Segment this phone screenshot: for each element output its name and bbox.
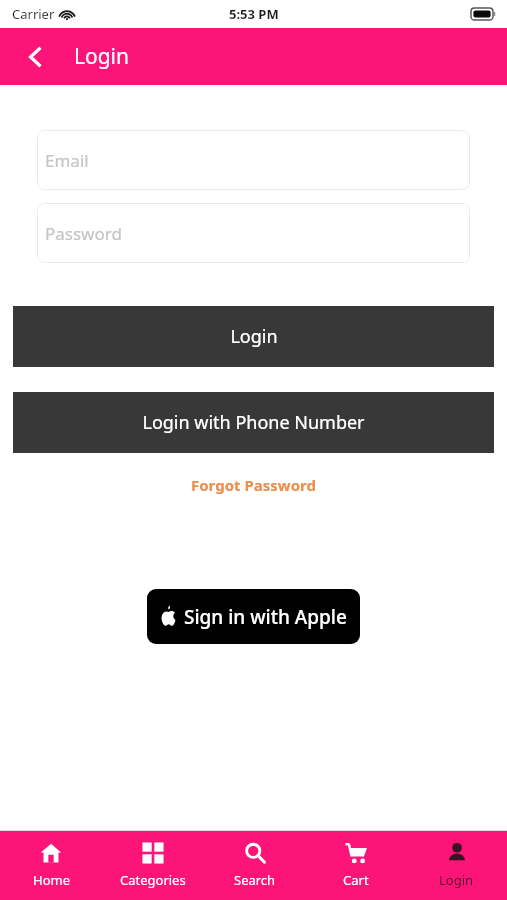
staticText: Categories (120, 871, 186, 889)
staticText: Password (45, 222, 122, 245)
button[interactable]: Forgot Password (0, 475, 507, 495)
staticText: Sign in with Apple (184, 604, 347, 630)
staticText: Login (74, 42, 130, 71)
button[interactable]: Login (406, 831, 507, 900)
button[interactable]: Sign in with Apple (147, 589, 360, 644)
button[interactable]: Password (37, 203, 470, 263)
staticText: Email (45, 149, 89, 172)
staticText: Search (234, 871, 276, 889)
staticText: Carrier (12, 5, 55, 23)
button[interactable]: Cart (305, 831, 406, 900)
staticText: Home (33, 871, 70, 889)
staticText: Login (439, 871, 474, 889)
button[interactable]: Login with Phone Number (13, 392, 494, 453)
button[interactable]: Categories (102, 831, 204, 900)
staticText: 5:53 PM (229, 5, 279, 23)
staticText: Forgot Password (191, 475, 316, 495)
staticText: Cart (343, 871, 369, 889)
button[interactable]: Login (13, 306, 494, 367)
staticText: Login with Phone Number (142, 410, 365, 435)
button[interactable]: Search (204, 831, 305, 900)
button[interactable]: Back (18, 39, 54, 75)
button[interactable]: Email (37, 130, 470, 190)
button[interactable]: Home (0, 831, 102, 900)
staticText: Login (230, 324, 278, 349)
